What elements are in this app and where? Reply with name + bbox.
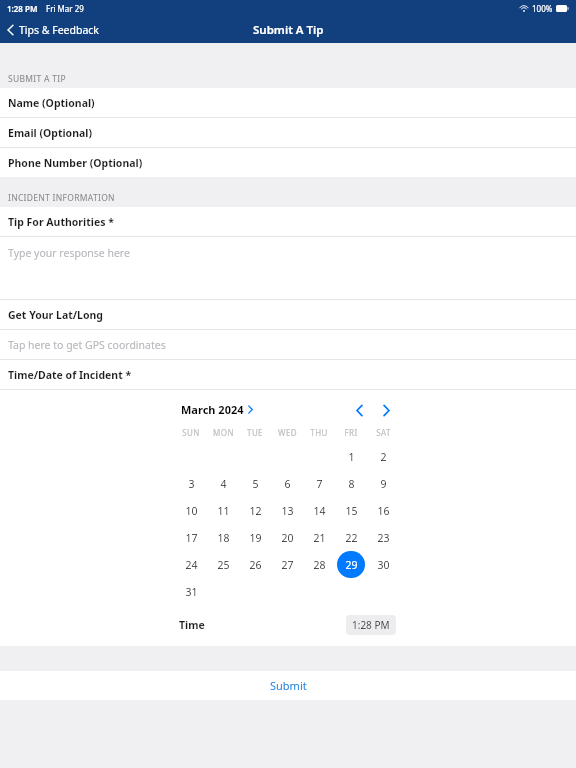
staticText: 24 [185,558,198,572]
button[interactable]: 19 [241,524,269,551]
staticText: 21 [313,531,326,545]
button[interactable]: 6 [273,470,301,497]
staticText: Submit A Tip [253,22,324,38]
button[interactable]: 16 [369,497,397,524]
button[interactable]: 9 [369,470,397,497]
staticText: 6 [284,477,291,491]
button[interactable]: FRI [337,421,365,443]
staticText: 30 [377,558,390,572]
staticText: Tip For Authorities * [8,215,114,229]
button[interactable]: Time/Date of Incident * [0,360,576,389]
button[interactable]: Get Your Lat/Long [0,300,576,329]
staticText: MON [213,427,234,438]
button[interactable]: 7 [305,470,333,497]
staticText: SAT [376,427,391,438]
button[interactable]: SUN [177,421,205,443]
staticText: 31 [185,585,198,599]
button[interactable]: 26 [241,551,269,578]
staticText: 10 [185,504,198,518]
button[interactable]: SAT [369,421,397,443]
button[interactable]: 11 [209,497,237,524]
staticText: 7 [316,477,323,491]
button[interactable]: Tips & Feedback [0,20,107,40]
button[interactable]: 5 [241,470,269,497]
button[interactable]: March 2024 [179,400,255,419]
staticText: Get Your Lat/Long [8,308,103,322]
button[interactable]: 23 [369,524,397,551]
button[interactable]: THU [305,421,333,443]
staticText: 8 [348,477,355,491]
staticText: INCIDENT INFORMATION [8,192,115,204]
staticText: 1:28 PM [352,618,390,632]
staticText: 19 [249,531,262,545]
staticText: TUE [247,427,263,438]
staticText: Phone Number (Optional) [8,156,143,170]
button[interactable]: Next month [375,399,397,421]
button[interactable]: 29 [337,551,365,578]
staticText: 17 [185,531,198,545]
staticText: 14 [313,504,326,518]
button[interactable]: 21 [305,524,333,551]
staticText: 28 [313,558,326,572]
staticText: 15 [345,504,358,518]
staticText: 1:28 PM [7,3,38,14]
staticText: Time/Date of Incident * [8,368,132,382]
button[interactable]: 28 [305,551,333,578]
staticText: 20 [281,531,294,545]
button[interactable]: Tip For Authorities * [0,207,576,236]
staticText: 23 [377,531,390,545]
staticText: Tips & Feedback [19,23,99,37]
staticText: 25 [217,558,230,572]
button[interactable]: TUE [241,421,269,443]
button[interactable]: 27 [273,551,301,578]
button[interactable]: Name (Optional) [0,88,576,117]
button[interactable]: Email (Optional) [0,118,576,147]
staticText: 100% [532,3,553,14]
staticText: 16 [377,504,390,518]
staticText: THU [310,427,328,438]
button[interactable]: Previous month [348,399,370,421]
button[interactable]: 12 [241,497,269,524]
staticText: 12 [249,504,262,518]
staticText: 4 [220,477,227,491]
staticText: Tap here to get GPS coordinates [8,338,166,352]
staticText: 29 [345,558,358,572]
staticText: Time [179,618,205,632]
button[interactable]: 24 [177,551,205,578]
button[interactable]: Tap here to get GPS coordinates [0,330,576,359]
staticText: SUN [182,427,200,438]
button[interactable]: 17 [177,524,205,551]
button[interactable]: 25 [209,551,237,578]
button[interactable]: 20 [273,524,301,551]
staticText: Email (Optional) [8,126,92,140]
button[interactable]: 14 [305,497,333,524]
button[interactable]: 13 [273,497,301,524]
staticText: 27 [281,558,294,572]
staticText: 22 [345,531,358,545]
button[interactable]: Submit [0,671,576,700]
button[interactable]: 2 [369,443,397,470]
button[interactable]: Phone Number (Optional) [0,148,576,177]
button[interactable]: 3 [177,470,205,497]
button[interactable]: 1:28 PM [346,615,396,635]
button[interactable]: 30 [369,551,397,578]
staticText: 26 [249,558,262,572]
button[interactable]: 1 [337,443,365,470]
button[interactable]: 18 [209,524,237,551]
staticText: Name (Optional) [8,96,95,110]
button[interactable]: 22 [337,524,365,551]
staticText: WED [278,427,297,438]
button[interactable]: 8 [337,470,365,497]
button[interactable]: 15 [337,497,365,524]
staticText: FRI [344,427,358,438]
staticText: March 2024 [181,402,244,417]
button[interactable]: 4 [209,470,237,497]
button[interactable]: 10 [177,497,205,524]
button[interactable]: MON [209,421,237,443]
button[interactable]: Type your response here [0,237,576,299]
button[interactable]: WED [273,421,301,443]
staticText: Type your response here [8,246,130,260]
staticText: 11 [217,504,230,518]
staticText: 3 [188,477,195,491]
button[interactable]: 31 [177,578,205,605]
